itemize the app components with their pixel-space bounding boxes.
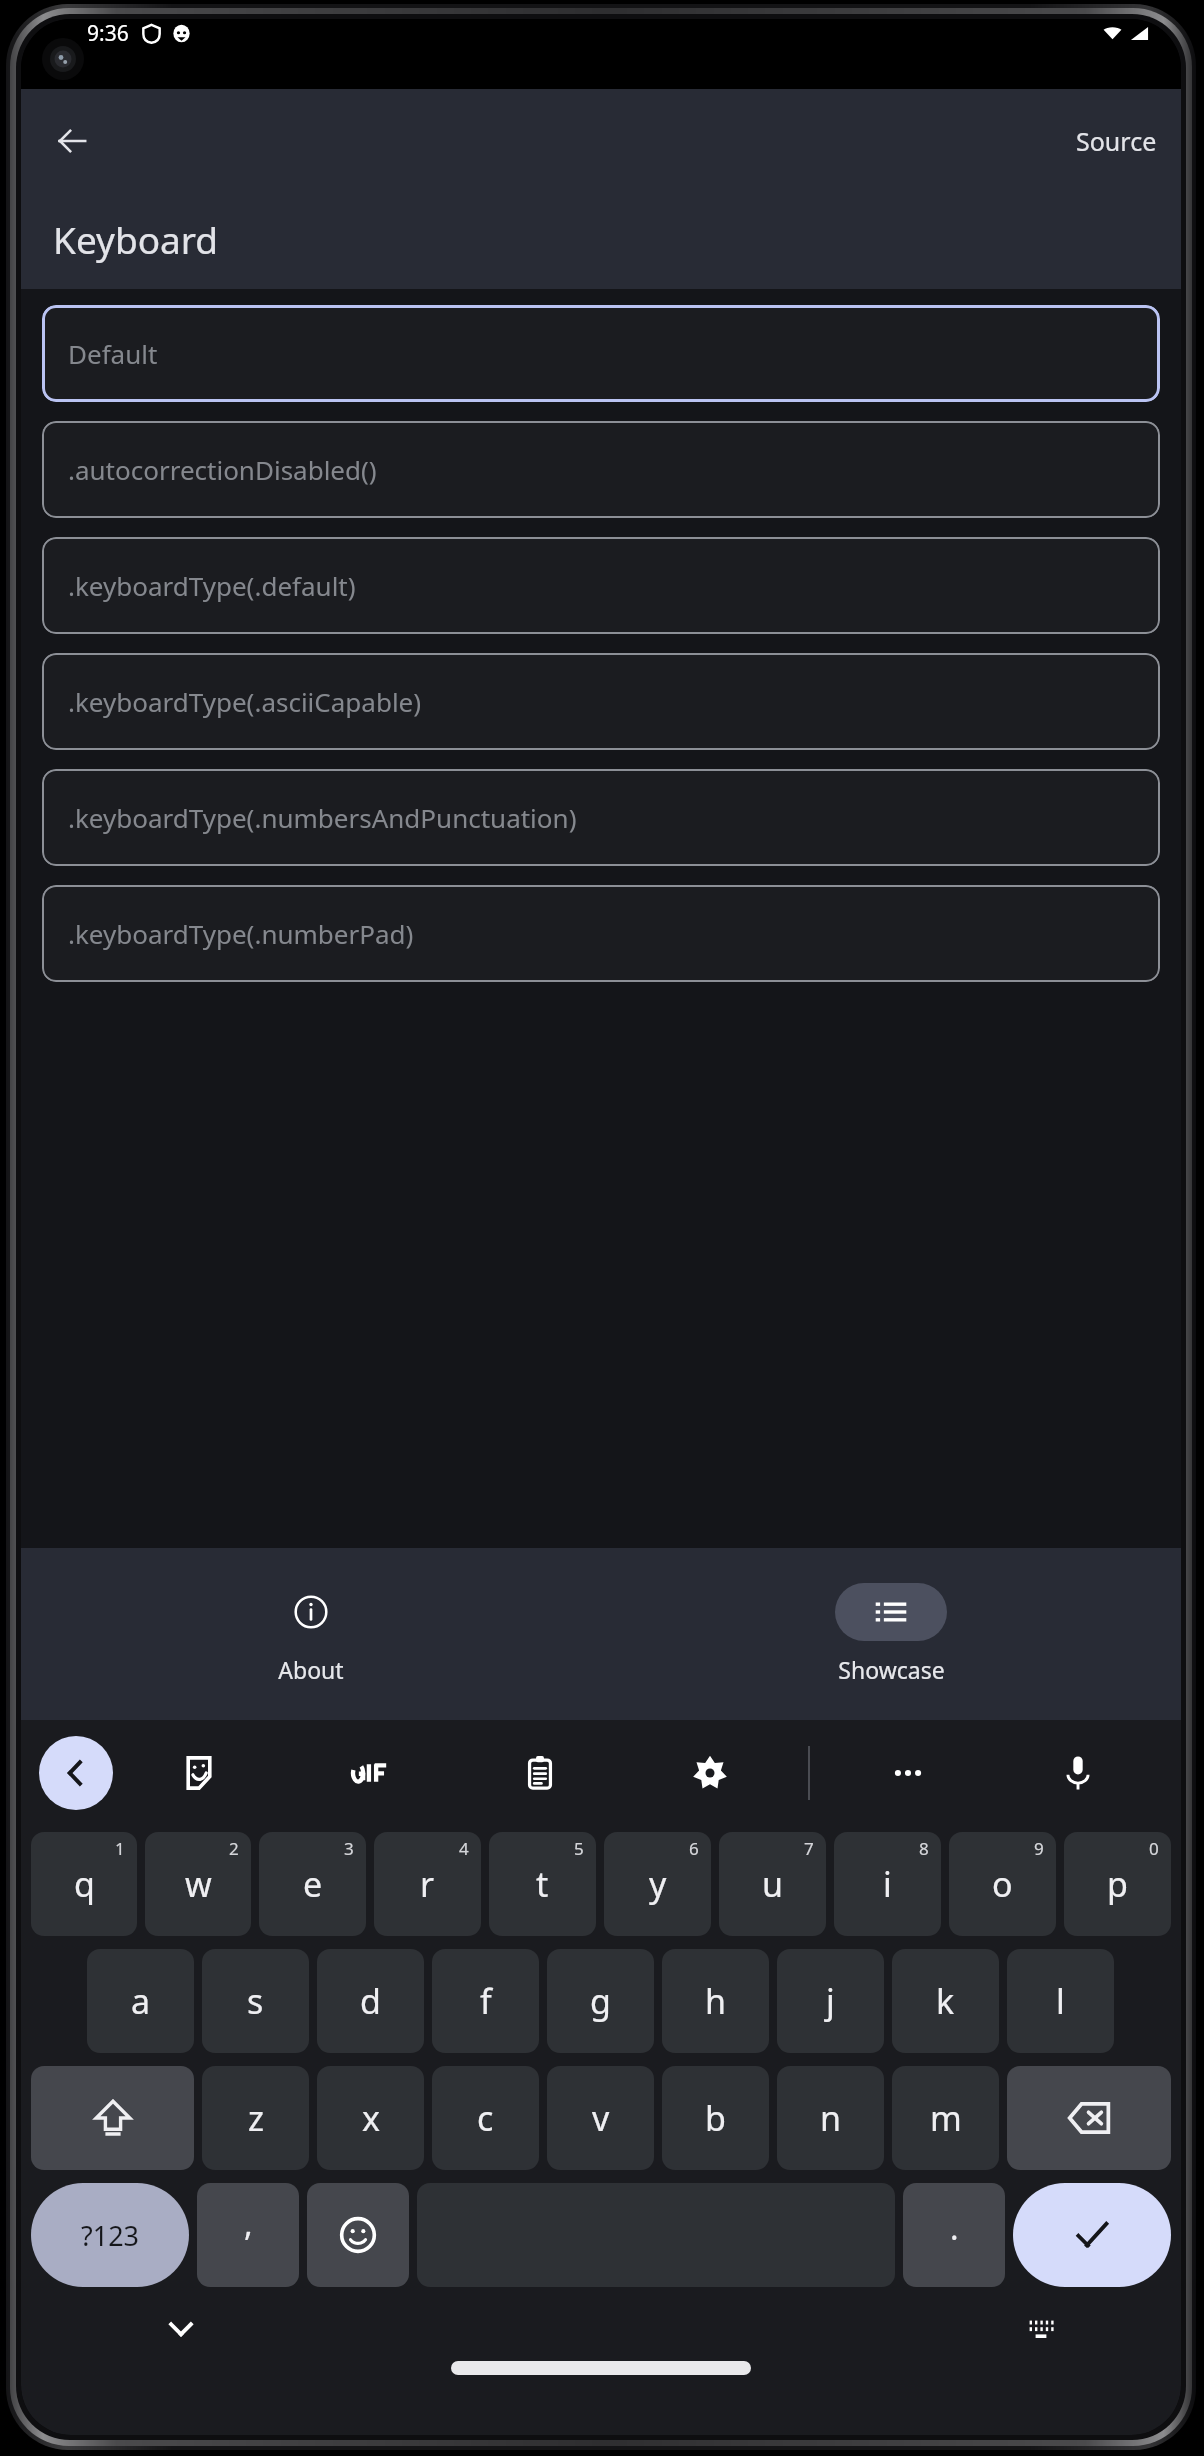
staticText: .keyboardType(.numberPad) (68, 916, 414, 951)
button[interactable]: f (432, 1949, 539, 2053)
staticText: d (360, 1978, 381, 2024)
staticText: p (1107, 1861, 1128, 1907)
staticText: .keyboardType(.numbersAndPunctuation) (68, 800, 577, 835)
button[interactable]: o (949, 1832, 1056, 1936)
button[interactable]: q (31, 1832, 137, 1936)
staticText: About (278, 1654, 344, 1685)
button[interactable]: Comma (197, 2183, 299, 2287)
button[interactable]: GIF (284, 1720, 455, 1826)
staticText: 9 (1034, 1837, 1044, 1860)
button[interactable]: w (145, 1832, 251, 1936)
staticText: a (131, 1978, 151, 2024)
staticText: 9:36 (87, 19, 129, 48)
button[interactable]: c (432, 2066, 539, 2170)
button[interactable]: Back (43, 112, 101, 170)
staticText: h (705, 1978, 727, 2024)
button[interactable]: Stickers (113, 1720, 284, 1826)
staticText: . (950, 2206, 959, 2250)
button[interactable]: Default (42, 305, 1160, 402)
button[interactable]: g (547, 1949, 654, 2053)
button[interactable]: m (892, 2066, 999, 2170)
staticText: g (590, 1978, 611, 2024)
staticText: f (480, 1978, 492, 2024)
button[interactable]: b (662, 2066, 769, 2170)
button[interactable]: h (662, 1949, 769, 2053)
button[interactable]: l (1007, 1949, 1114, 2053)
button[interactable]: i (834, 1832, 941, 1936)
button[interactable]: Voice input (993, 1720, 1163, 1826)
staticText: 5 (574, 1837, 584, 1860)
button[interactable]: e (259, 1832, 366, 1936)
button[interactable]: d (317, 1949, 424, 2053)
button[interactable]: .keyboardType(.default) (42, 537, 1160, 634)
staticText: .keyboardType(.default) (68, 568, 356, 603)
button[interactable]: p (1064, 1832, 1171, 1936)
staticText: Source (1076, 124, 1157, 158)
staticText: u (762, 1861, 784, 1907)
button[interactable]: Hide keyboard (149, 2297, 213, 2361)
staticText: l (1056, 1978, 1065, 2024)
staticText: k (936, 1978, 955, 2024)
button[interactable]: t (489, 1832, 596, 1936)
button[interactable]: n (777, 2066, 884, 2170)
staticText: 3 (344, 1837, 354, 1860)
button[interactable]: .keyboardType(.numberPad) (42, 885, 1160, 982)
button[interactable]: x (317, 2066, 424, 2170)
button[interactable]: Clipboard (455, 1720, 625, 1826)
staticText: , (244, 2202, 253, 2246)
staticText: z (248, 2095, 264, 2141)
button[interactable]: .autocorrectionDisabled() (42, 421, 1160, 518)
staticText: x (362, 2095, 380, 2141)
staticText: ?123 (81, 2217, 140, 2254)
button[interactable]: a (87, 1949, 194, 2053)
button[interactable]: Period (903, 2183, 1005, 2287)
staticText: s (247, 1978, 264, 2024)
staticText: Keyboard (53, 214, 219, 264)
button[interactable]: Shift (31, 2066, 194, 2170)
button[interactable]: Showcase (601, 1548, 1181, 1720)
button[interactable]: z (202, 2066, 309, 2170)
staticText: j (826, 1978, 835, 2024)
staticText: i (883, 1861, 892, 1907)
button[interactable]: v (547, 2066, 654, 2170)
button[interactable]: y (604, 1832, 711, 1936)
button[interactable]: More options (823, 1720, 993, 1826)
staticText: .autocorrectionDisabled() (68, 452, 377, 487)
button[interactable]: Source (1066, 114, 1167, 168)
staticText: n (820, 2095, 842, 2141)
staticText: m (930, 2095, 962, 2141)
button[interactable]: k (892, 1949, 999, 2053)
button[interactable]: j (777, 1949, 884, 2053)
button[interactable]: ?123 (31, 2183, 189, 2287)
staticText: 8 (919, 1837, 929, 1860)
button[interactable]: s (202, 1949, 309, 2053)
staticText: r (420, 1861, 435, 1907)
staticText: w (185, 1861, 212, 1907)
button[interactable]: Back (39, 1736, 113, 1810)
button[interactable]: u (719, 1832, 826, 1936)
staticText: 6 (689, 1837, 699, 1860)
button[interactable]: .keyboardType(.numbersAndPunctuation) (42, 769, 1160, 866)
staticText: 2 (229, 1837, 239, 1860)
staticText: t (536, 1861, 549, 1907)
staticText: Showcase (838, 1654, 945, 1685)
staticText: q (74, 1861, 95, 1907)
staticText: Default (68, 336, 158, 371)
button[interactable]: Switch keyboard (1009, 2297, 1073, 2361)
staticText: 1 (115, 1837, 125, 1860)
staticText: y (649, 1861, 667, 1907)
button[interactable]: Backspace (1007, 2066, 1171, 2170)
staticText: 0 (1149, 1837, 1159, 1860)
button[interactable]: About (21, 1548, 601, 1720)
button[interactable]: Enter (1013, 2183, 1171, 2287)
staticText: 7 (804, 1837, 814, 1860)
button[interactable]: Settings (625, 1720, 795, 1826)
staticText: e (303, 1861, 323, 1907)
button[interactable]: Emoji (307, 2183, 409, 2287)
button[interactable]: .keyboardType(.asciiCapable) (42, 653, 1160, 750)
staticText: .keyboardType(.asciiCapable) (68, 684, 422, 719)
staticText: v (592, 2095, 610, 2141)
staticText: 4 (459, 1837, 469, 1860)
button[interactable]: r (374, 1832, 481, 1936)
